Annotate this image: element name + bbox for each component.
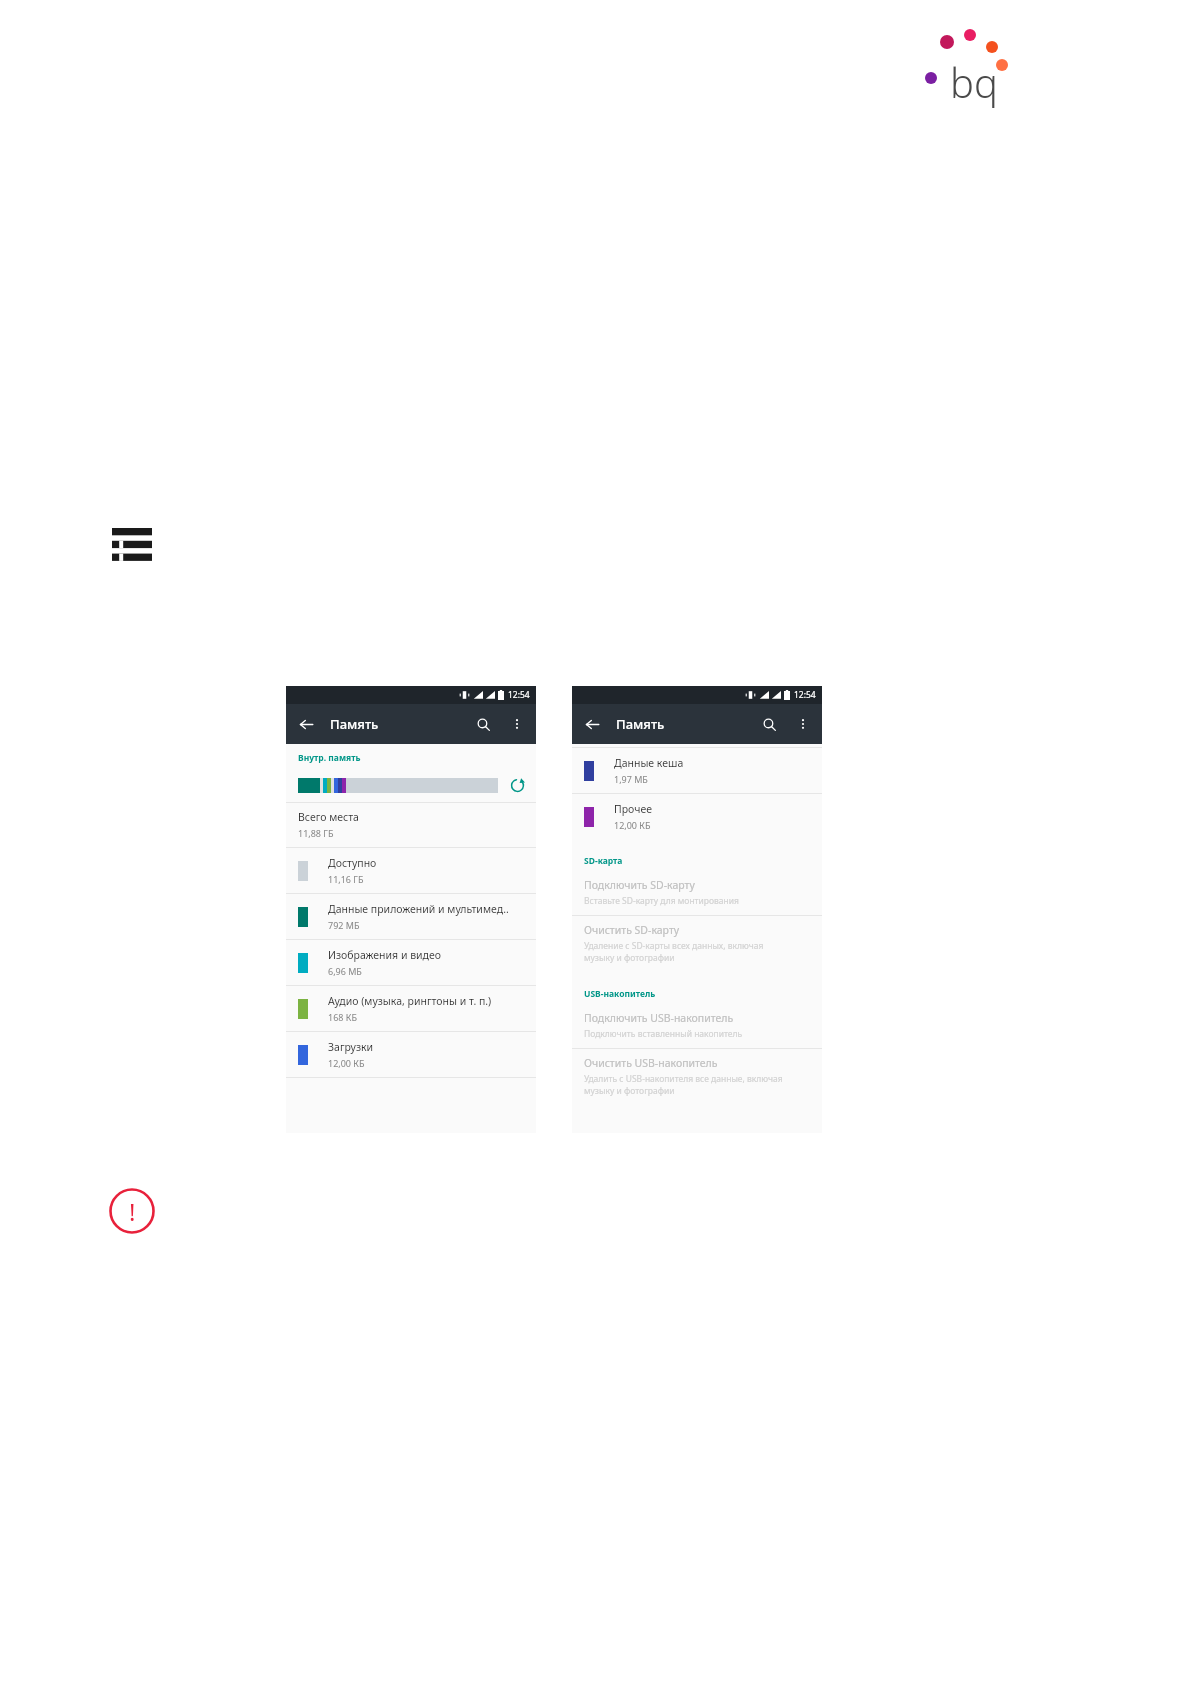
staticText: Данные приложений и мультимед.. <box>328 902 509 916</box>
staticText: Изображения и видео <box>328 948 441 962</box>
button[interactable]: Back <box>286 704 326 744</box>
button[interactable]: Всего места <box>286 803 536 847</box>
staticText: SD-карта <box>584 855 623 867</box>
button[interactable]: Изображения и видео <box>286 940 536 985</box>
button[interactable]: Очистить USB-накопитель <box>572 1049 822 1105</box>
button[interactable]: Подключить SD-карту <box>572 871 822 915</box>
button[interactable]: Search <box>464 705 502 743</box>
staticText: USB-накопитель <box>584 988 656 1000</box>
staticText: Удаление с SD-карты всех данных, включая… <box>584 940 764 964</box>
button[interactable]: Данные приложений и мультимед.. <box>286 894 536 939</box>
staticText: Загрузки <box>328 1040 374 1054</box>
staticText: Внутр. память <box>298 752 361 764</box>
staticText: 11,88 ГБ <box>298 827 334 839</box>
staticText: Аудио (музыка, рингтоны и т. п.) <box>328 994 492 1008</box>
staticText: Память <box>330 715 379 733</box>
button[interactable]: More options <box>788 709 818 739</box>
staticText: 792 МБ <box>328 919 360 931</box>
button[interactable]: Refresh <box>506 774 528 796</box>
button[interactable]: Загрузки <box>286 1032 536 1077</box>
button[interactable]: Аудио (музыка, рингтоны и т. п.) <box>286 986 536 1031</box>
staticText: Подключить USB-накопитель <box>584 1011 734 1025</box>
button[interactable]: Доступно <box>286 848 536 893</box>
staticText: 12:54 <box>508 689 530 701</box>
staticText: bq <box>950 55 998 109</box>
staticText: Всего места <box>298 810 359 824</box>
staticText: 168 КБ <box>328 1011 357 1023</box>
staticText: 1,97 МБ <box>614 773 648 785</box>
staticText: Удалить с USB-накопителя все данные, вкл… <box>584 1073 783 1097</box>
staticText: ! <box>129 1195 136 1228</box>
staticText: 11,16 ГБ <box>328 873 364 885</box>
staticText: 6,96 МБ <box>328 965 362 977</box>
staticText: Данные кеша <box>614 756 684 770</box>
button[interactable]: More options <box>502 709 532 739</box>
staticText: Доступно <box>328 856 377 870</box>
staticText: Подключить вставленный накопитель <box>584 1028 743 1040</box>
button[interactable]: Очистить SD-карту <box>572 916 822 972</box>
staticText: Вставьте SD-карту для монтирования <box>584 895 739 907</box>
staticText: Подключить SD-карту <box>584 878 695 892</box>
staticText: 12,00 КБ <box>328 1057 365 1069</box>
button[interactable]: Данные кеша <box>572 748 822 793</box>
staticText: Прочее <box>614 802 652 816</box>
button[interactable]: Search <box>750 705 788 743</box>
staticText: Очистить USB-накопитель <box>584 1056 718 1070</box>
staticText: Очистить SD-карту <box>584 923 680 937</box>
staticText: 12:54 <box>794 689 816 701</box>
staticText: 12,00 КБ <box>614 819 651 831</box>
staticText: Память <box>616 715 665 733</box>
button[interactable]: Back <box>572 704 612 744</box>
button[interactable]: Прочее <box>572 794 822 839</box>
button[interactable]: Подключить USB-накопитель <box>572 1004 822 1048</box>
